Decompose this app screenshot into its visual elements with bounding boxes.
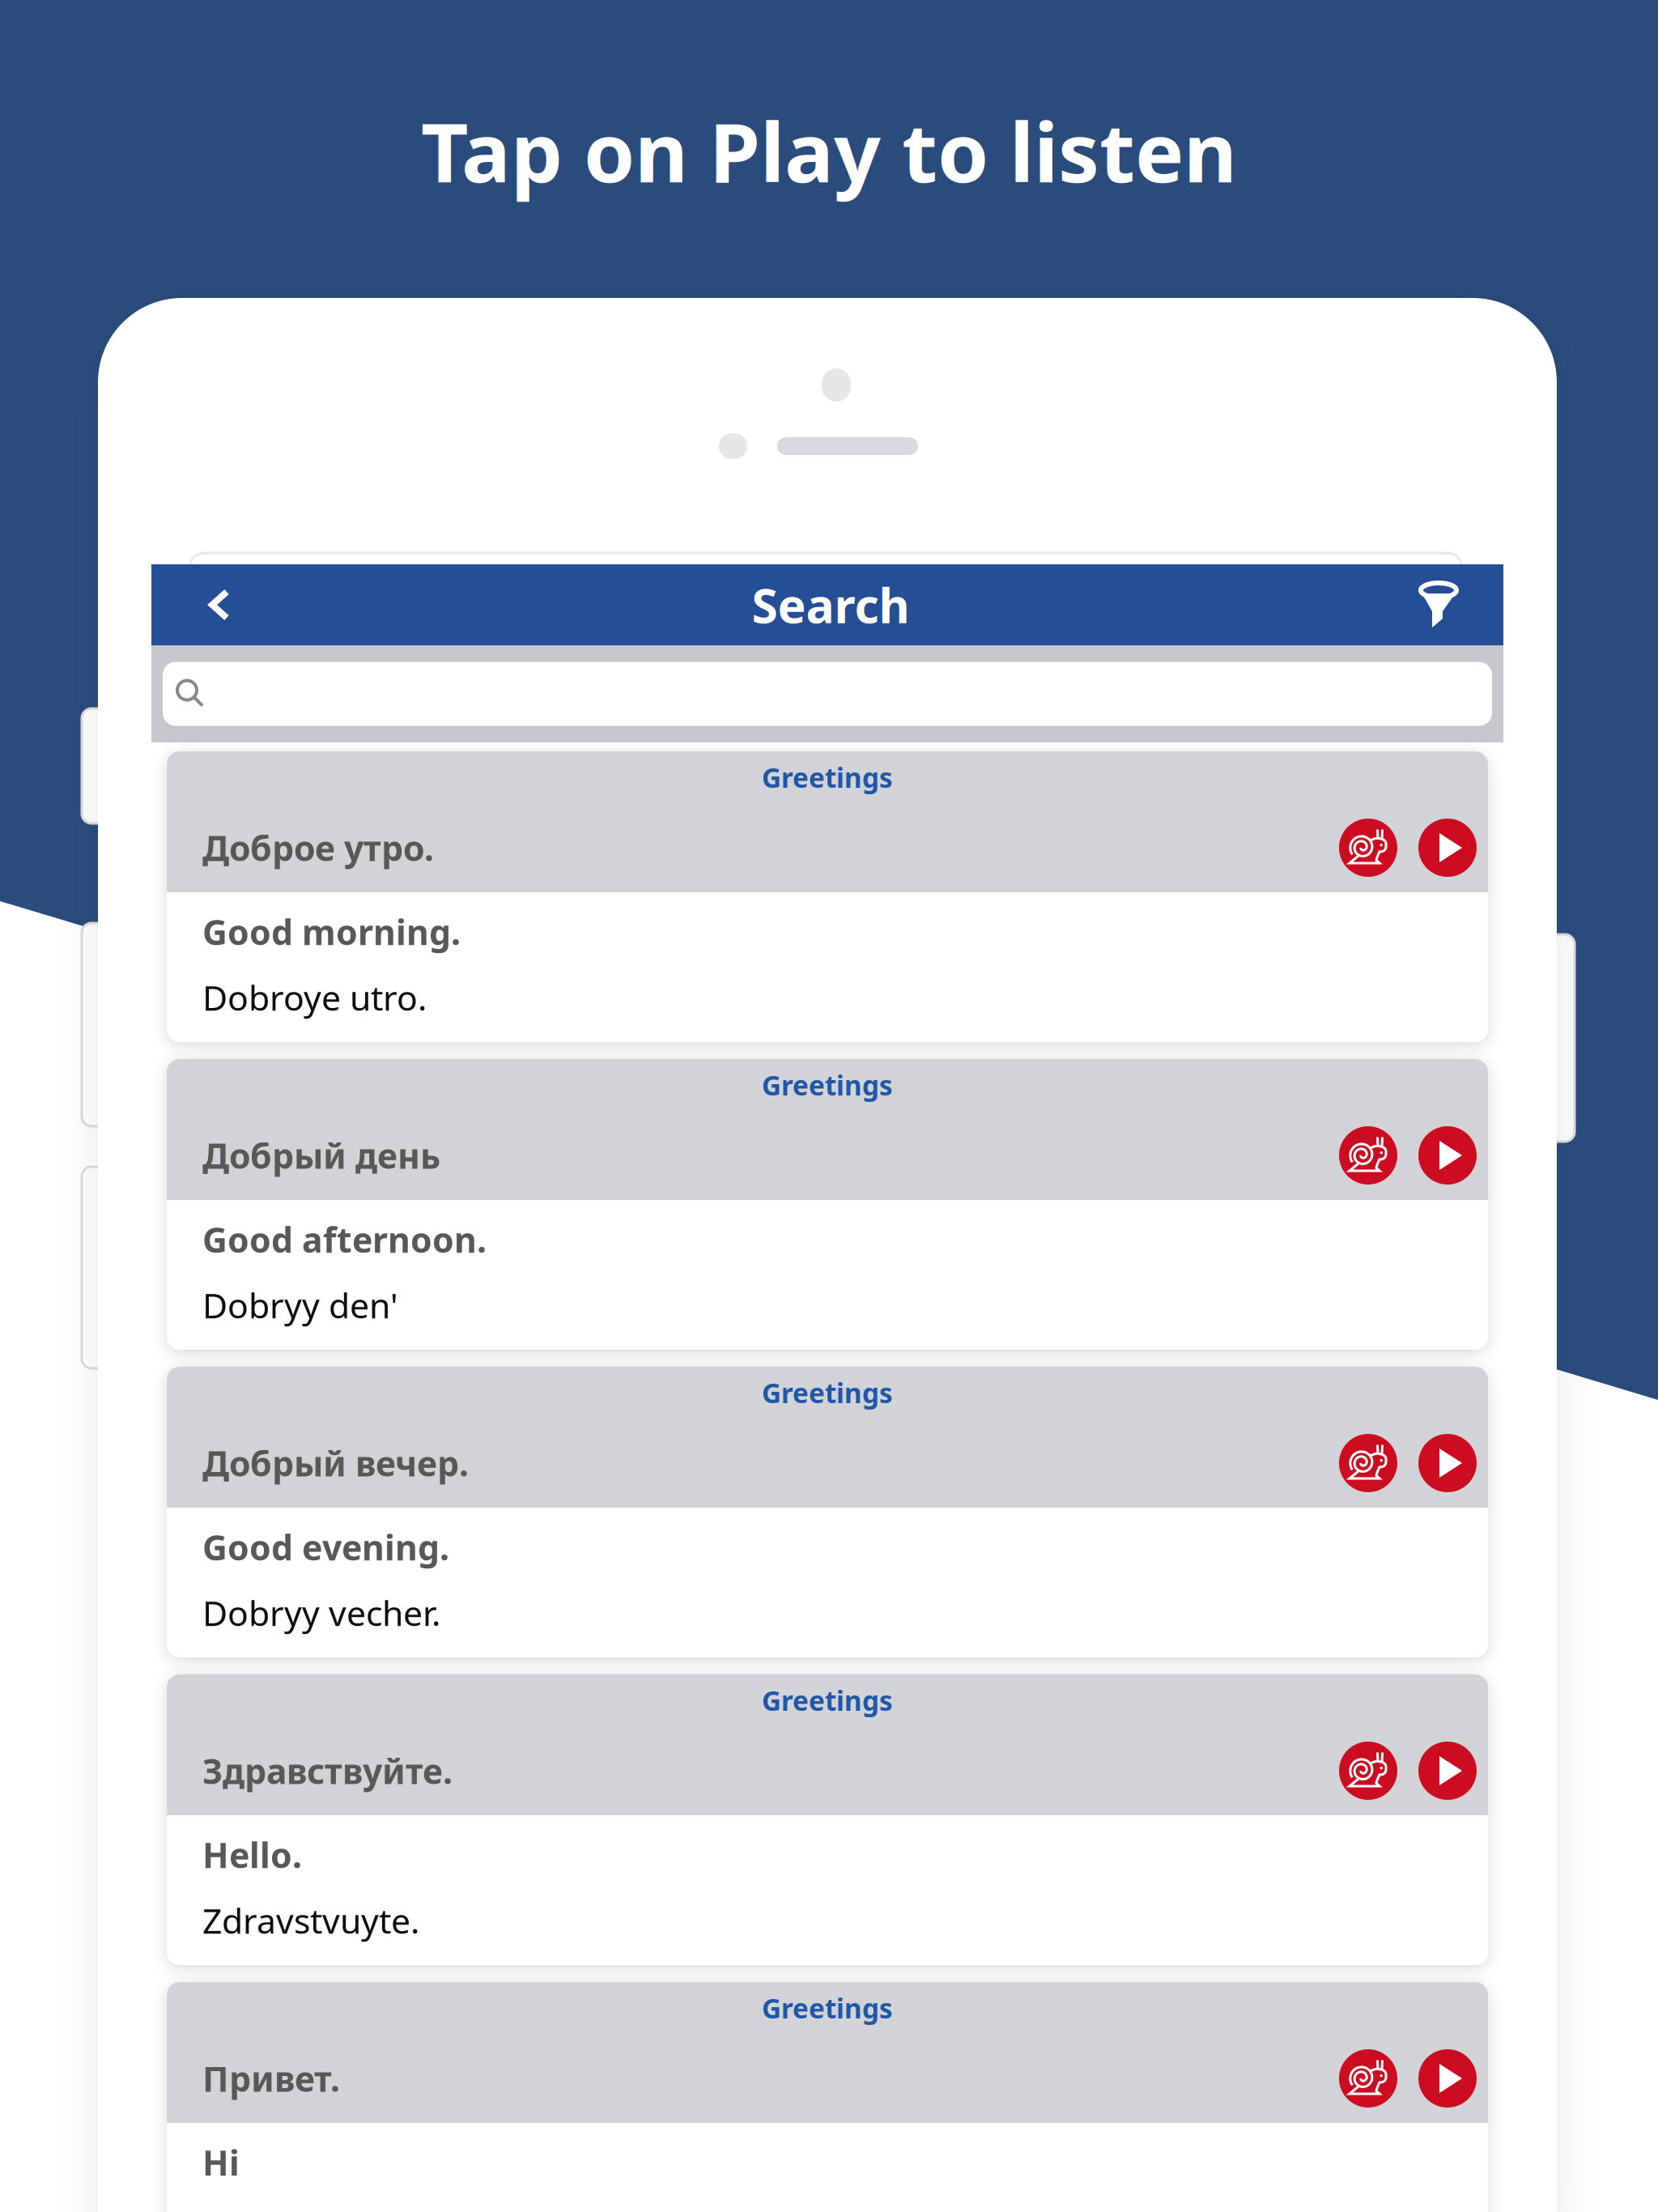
button[interactable]: Good afternoon. — [167, 1200, 1488, 1350]
staticText: Привет. — [202, 2055, 340, 2101]
button[interactable]: Play slowly — [1339, 1126, 1397, 1185]
staticText: Good evening. — [202, 1524, 449, 1570]
button[interactable]: Play — [1418, 2049, 1477, 2108]
staticText: Greetings — [762, 759, 893, 795]
button[interactable]: Play slowly — [1339, 819, 1397, 877]
button[interactable]: Hi — [167, 2123, 1488, 2212]
button[interactable]: Search — [163, 662, 1492, 726]
staticText: Hi — [202, 2139, 240, 2185]
button[interactable]: Play slowly — [1339, 1742, 1397, 1800]
staticText: Добрый день — [202, 1132, 440, 1178]
staticText: Dobroye utro. — [202, 974, 427, 1020]
button[interactable]: Play slowly — [1339, 2049, 1397, 2108]
staticText: Greetings — [762, 1067, 893, 1103]
button[interactable]: Back — [151, 564, 287, 645]
staticText: Tap on Play to listen — [421, 96, 1237, 205]
button[interactable]: Good evening. — [167, 1508, 1488, 1657]
staticText: Good morning. — [202, 909, 461, 955]
staticText: Dobryy den' — [202, 1282, 398, 1328]
button[interactable]: Play — [1418, 1126, 1477, 1185]
staticText: Доброе утро. — [202, 825, 434, 871]
staticText: Zdravstvuyte. — [202, 1897, 419, 1943]
staticText: Greetings — [762, 1682, 893, 1718]
staticText: Здравствуйте. — [202, 1748, 453, 1794]
button[interactable]: Hello. — [167, 1815, 1488, 1965]
staticText: Greetings — [762, 1990, 893, 2026]
staticText: Dobryy vecher. — [202, 1590, 440, 1636]
button[interactable]: Filter — [1374, 564, 1503, 645]
staticText: Добрый вечер. — [202, 1440, 469, 1486]
button[interactable]: Play — [1418, 819, 1477, 877]
button[interactable]: Play — [1418, 1742, 1477, 1800]
staticText: Search — [752, 573, 910, 636]
button[interactable]: Good morning. — [167, 892, 1488, 1042]
staticText: Greetings — [762, 1375, 893, 1411]
button[interactable]: Play slowly — [1339, 1434, 1397, 1492]
staticText: Hello. — [202, 1832, 302, 1878]
staticText: Good afternoon. — [202, 1216, 487, 1262]
button[interactable]: Play — [1418, 1434, 1477, 1492]
